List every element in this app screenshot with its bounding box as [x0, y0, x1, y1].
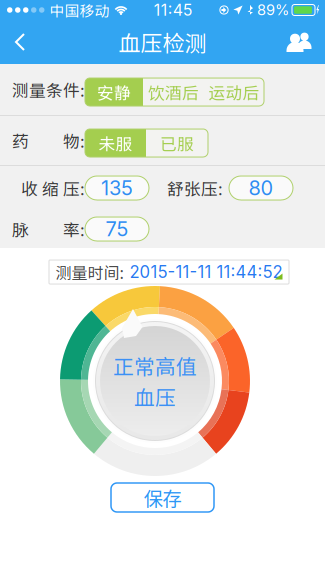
- staticText: 保存: [143, 483, 181, 511]
- staticText: 11:45: [154, 0, 193, 20]
- button[interactable]: 已服: [146, 129, 208, 157]
- staticText: 饮酒后: [148, 80, 199, 104]
- staticText: 脉 率:: [12, 217, 85, 241]
- button[interactable]: 饮酒后: [143, 78, 204, 106]
- staticText: 血压: [134, 381, 176, 411]
- staticText: 运动后: [208, 80, 259, 104]
- button[interactable]: 安静: [85, 78, 143, 106]
- button[interactable]: 运动后: [204, 78, 264, 106]
- staticText: 75: [105, 217, 128, 241]
- staticText: 正常高值: [113, 351, 197, 380]
- staticText: 药 物:: [12, 128, 85, 152]
- staticText: 135: [101, 176, 133, 200]
- button[interactable]: Back: [0, 22, 40, 61]
- staticText: 测量条件:: [12, 77, 85, 101]
- staticText: 收 缩 压:: [21, 176, 85, 200]
- staticText: 舒张压:: [167, 176, 223, 200]
- staticText: 80: [248, 176, 273, 200]
- staticText: 测量时间:: [55, 260, 123, 284]
- button[interactable]: Contacts: [276, 22, 325, 61]
- staticText: 89%: [257, 1, 289, 19]
- button[interactable]: 保存: [111, 483, 214, 512]
- button[interactable]: 未服: [85, 129, 146, 157]
- staticText: 安静: [97, 80, 131, 104]
- staticText: 血压检测: [118, 26, 206, 58]
- staticText: 2015-11-11 11:44:52: [129, 262, 282, 282]
- staticText: 中国移动: [49, 0, 109, 21]
- staticText: 已服: [160, 131, 194, 155]
- staticText: 未服: [98, 131, 132, 155]
